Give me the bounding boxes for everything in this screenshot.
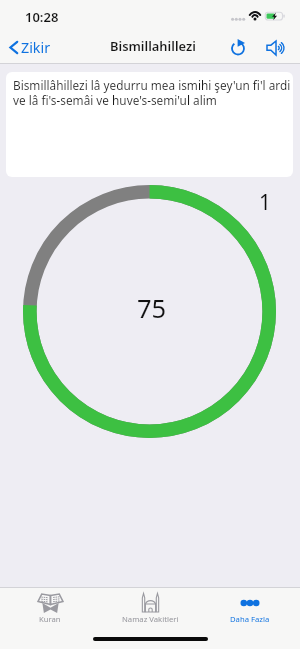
button[interactable]: Sound — [267, 37, 289, 59]
staticText: Zikir — [21, 38, 51, 57]
button[interactable]: Refresh — [227, 37, 249, 59]
button[interactable]: Tap counter — [23, 185, 276, 438]
staticText: Kuran — [39, 614, 61, 624]
staticText: 75 — [137, 291, 167, 326]
staticText: 1 — [259, 188, 272, 217]
staticText: Bismillahillezi — [110, 37, 196, 55]
button[interactable]: Kuran — [0, 588, 100, 632]
staticText: Bismillâhillezi lâ yedurru mea ismihi şe… — [13, 77, 293, 108]
staticText: 10:28 — [25, 8, 59, 26]
staticText: Namaz Vakitleri — [122, 614, 179, 624]
staticText: Daha Fazla — [230, 614, 270, 624]
button[interactable]: Zikir — [9, 38, 51, 57]
button[interactable]: Daha Fazla — [200, 588, 300, 632]
button[interactable]: Namaz Vakitleri — [100, 588, 200, 632]
